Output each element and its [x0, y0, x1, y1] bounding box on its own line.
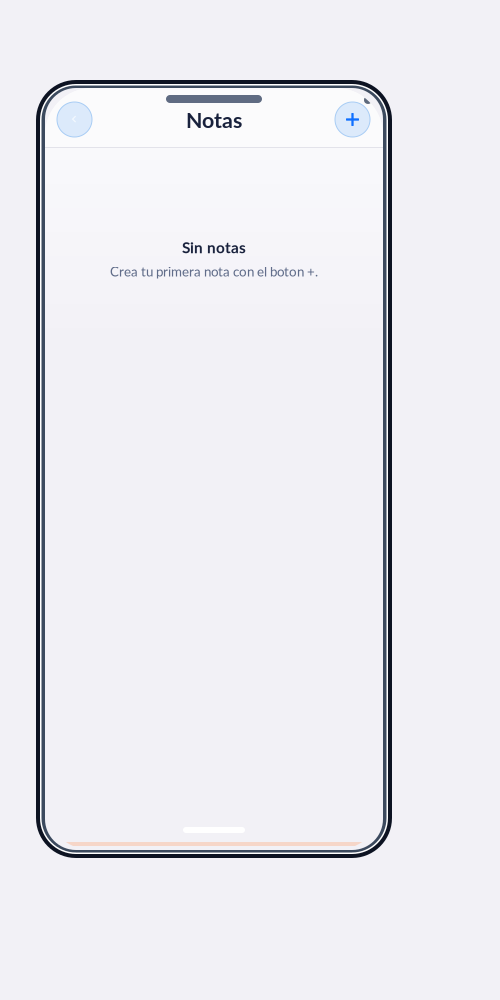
staticText: Sin notas [182, 238, 246, 256]
button[interactable]: Atrás [57, 102, 92, 137]
staticText: Crea tu primera nota con el boton +. [110, 263, 318, 279]
staticText: Notas [186, 107, 242, 133]
button[interactable]: Nueva nota [335, 102, 370, 137]
